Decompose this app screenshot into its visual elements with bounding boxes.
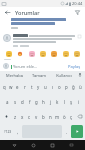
button[interactable]: m	[54, 109, 61, 124]
staticText: y	[37, 84, 40, 90]
button[interactable]: h	[40, 94, 47, 109]
staticText: m	[55, 114, 60, 120]
button[interactable]: g	[33, 94, 40, 109]
staticText: u	[44, 84, 47, 90]
staticText: z	[14, 114, 17, 120]
staticText: ş	[70, 99, 73, 105]
staticText: b	[42, 114, 45, 120]
button[interactable]: t	[28, 80, 35, 94]
staticText: v	[35, 114, 38, 120]
button[interactable]: v	[33, 109, 40, 124]
staticText: 20:44	[72, 1, 83, 6]
button[interactable]: Yorum ekle...	[11, 64, 65, 69]
staticText: r	[24, 84, 26, 90]
staticText: Paylaş	[68, 64, 81, 69]
button[interactable]: o	[56, 80, 63, 94]
staticText: .	[66, 129, 68, 135]
staticText: f	[29, 99, 31, 105]
button[interactable]: Tamam	[26, 71, 51, 79]
button[interactable]: Back	[9, 140, 19, 150]
staticText: i	[78, 99, 80, 105]
button[interactable]: Period	[63, 124, 70, 139]
staticText: ü	[79, 84, 82, 90]
button[interactable]: Recent apps	[47, 140, 57, 150]
staticText: l	[64, 99, 66, 105]
button[interactable]: ü	[77, 80, 84, 94]
button[interactable]: j	[47, 94, 54, 109]
staticText: Kullanıcı	[56, 73, 72, 78]
staticText: Tamam	[32, 73, 46, 78]
staticText: w	[9, 84, 13, 90]
staticText: j	[50, 99, 52, 105]
button[interactable]: z	[11, 109, 19, 124]
button[interactable]: b	[40, 109, 47, 124]
staticText: n	[49, 114, 52, 120]
staticText: k	[56, 99, 59, 105]
button[interactable]: ç	[68, 109, 75, 124]
button[interactable]: Home	[28, 140, 38, 150]
staticText: ?123	[4, 129, 12, 134]
button[interactable]: Emoji 7	[72, 49, 81, 58]
button[interactable]: ?123	[1, 124, 14, 139]
button[interactable]: Emoji 5	[49, 49, 58, 58]
button[interactable]: Back	[3, 8, 12, 17]
button[interactable]: Voice input	[76, 71, 83, 79]
staticText: ğ	[72, 84, 75, 90]
button[interactable]: Kullanıcı	[51, 71, 76, 79]
button[interactable]: l	[61, 94, 68, 109]
staticText: e	[16, 84, 19, 90]
button[interactable]: q	[1, 80, 7, 94]
staticText: Yorum ekle...	[13, 64, 38, 69]
staticText: g	[35, 99, 38, 105]
button[interactable]: n	[47, 109, 54, 124]
button[interactable]: i	[75, 94, 82, 109]
button[interactable]: Emoji 4	[38, 49, 47, 58]
button[interactable]: Hide keyboard	[66, 140, 76, 150]
button[interactable]: Like	[0, 34, 85, 47]
staticText: s	[14, 99, 17, 105]
staticText: Yorumlar	[15, 9, 40, 17]
staticText: ç	[70, 114, 73, 120]
staticText: h	[42, 99, 45, 105]
button[interactable]: Merhaba	[2, 71, 26, 79]
button[interactable]: f	[26, 94, 33, 109]
button[interactable]: Emoji 1	[4, 49, 13, 58]
button[interactable]: s	[11, 94, 19, 109]
button[interactable]: Paylaş	[67, 63, 82, 70]
staticText: Merhaba	[6, 73, 23, 78]
button[interactable]: Emoji 2	[15, 49, 24, 58]
button[interactable]: p	[63, 80, 70, 94]
button[interactable]: Filter	[73, 8, 82, 17]
staticText: ö	[63, 114, 66, 120]
button[interactable]: Emoji 3	[27, 49, 36, 58]
button[interactable]: Backspace	[75, 109, 84, 124]
button[interactable]: Like	[77, 34, 82, 39]
button[interactable]: w	[7, 80, 14, 94]
staticText: p	[65, 84, 68, 90]
button[interactable]: ğ	[70, 80, 77, 94]
staticText: q	[3, 84, 6, 90]
button[interactable]: ö	[61, 109, 68, 124]
button[interactable]: r	[21, 80, 28, 94]
button[interactable]: Comma	[14, 124, 21, 139]
button[interactable]: ş	[68, 94, 75, 109]
button[interactable]: Send	[71, 125, 83, 138]
staticText: o	[58, 84, 61, 90]
button[interactable]: a	[3, 94, 11, 109]
button[interactable]: x	[19, 109, 26, 124]
button[interactable]: y	[35, 80, 42, 94]
button[interactable]: e	[14, 80, 21, 94]
button[interactable]: Shift	[1, 109, 11, 124]
staticText: ı	[52, 84, 54, 90]
button[interactable]: ı	[49, 80, 56, 94]
button[interactable]: d	[19, 94, 26, 109]
staticText: c	[28, 114, 31, 120]
button[interactable]: u	[42, 80, 49, 94]
staticText: x	[21, 114, 24, 120]
staticText: d	[21, 99, 24, 105]
button[interactable]: c	[26, 109, 33, 124]
button[interactable]: Emoji 6	[61, 49, 70, 58]
staticText: a	[6, 99, 9, 105]
button[interactable]: k	[54, 94, 61, 109]
